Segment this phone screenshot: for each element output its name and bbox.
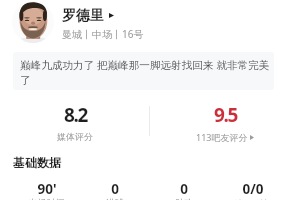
button[interactable]: 9.5 — [150, 102, 300, 143]
staticText: 进球 — [106, 197, 124, 200]
staticText: 巅峰九成功力了 把巅峰那一脚远射找回来 就非常完美了 — [20, 58, 272, 87]
button[interactable]: 8.2 — [0, 102, 150, 142]
staticText: 曼城丨中场丨16号 — [62, 27, 144, 41]
staticText: 113吧友评分 — [196, 131, 248, 143]
button[interactable]: 0 — [81, 180, 149, 200]
staticText: 9.5 — [214, 102, 237, 128]
staticText: 助攻 — [175, 197, 193, 200]
staticText: 90' — [37, 180, 57, 198]
button[interactable]: 0/0 — [218, 180, 287, 200]
button[interactable]: 基础数据 — [13, 155, 61, 170]
button[interactable]: 0 — [149, 180, 218, 200]
staticText: 媒体评分 — [57, 131, 93, 142]
staticText: 出场时间 — [29, 197, 65, 200]
staticText: 8.2 — [64, 102, 87, 128]
other: Player photo — [12, 1, 54, 43]
staticText: 射正/射门 — [233, 197, 273, 200]
staticText: 罗德里 — [62, 7, 104, 25]
staticText: 0 — [111, 180, 119, 198]
button[interactable]: Player photo — [12, 1, 136, 43]
staticText: 0/0 — [242, 180, 264, 198]
button[interactable]: 巅峰九成功力了 把巅峰那一脚远射找回来 就非常完美了 — [13, 52, 274, 90]
button[interactable]: 90' — [13, 180, 81, 200]
staticText: 0 — [180, 180, 188, 198]
